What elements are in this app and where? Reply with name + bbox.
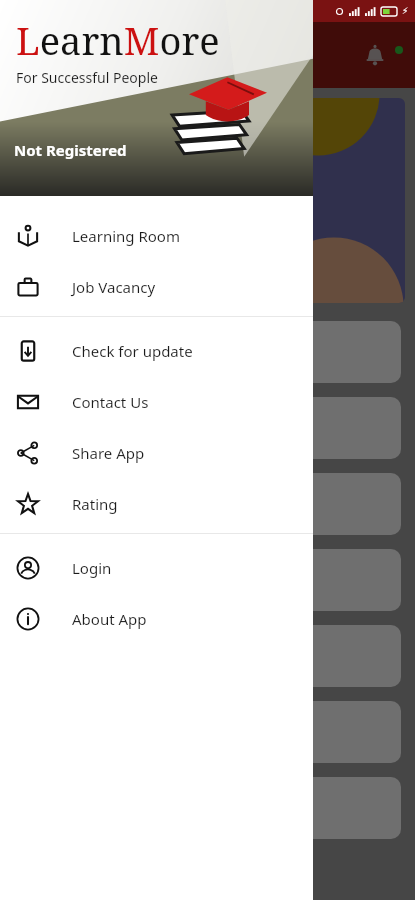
staticText: Check for update [72, 341, 193, 361]
staticText: Learning Room [72, 226, 180, 246]
button[interactable]: About App [0, 593, 313, 644]
button[interactable] [14, 701, 401, 763]
staticText: ⚡ [402, 6, 409, 16]
button[interactable]: Check for update [0, 325, 313, 376]
staticText: LearnMore [16, 14, 220, 66]
button[interactable] [14, 549, 401, 611]
button[interactable]: Notifications [355, 35, 395, 75]
button[interactable]: Rating [0, 478, 313, 529]
staticText: Login [72, 558, 112, 578]
button[interactable] [14, 397, 401, 459]
button[interactable] [14, 625, 401, 687]
button[interactable]: Share App [0, 427, 313, 478]
staticText: Job Vacancy [72, 277, 156, 297]
staticText: About App [72, 609, 147, 629]
button[interactable] [14, 321, 401, 383]
staticText: Contact Us [72, 392, 149, 412]
staticText: For Successful People [16, 68, 158, 87]
staticText: Share App [72, 443, 145, 463]
button[interactable]: DASHBOARD [14, 473, 401, 535]
staticText: Not Registered [14, 140, 127, 160]
button[interactable]: Login [0, 542, 313, 593]
button[interactable]: Contact Us [0, 376, 313, 427]
button[interactable] [14, 777, 401, 839]
staticText: Rating [72, 494, 118, 514]
button[interactable]: Learning Room [0, 210, 313, 261]
button[interactable] [10, 98, 405, 303]
button[interactable]: Job Vacancy [0, 261, 313, 312]
